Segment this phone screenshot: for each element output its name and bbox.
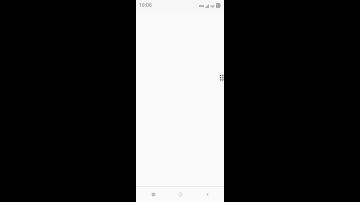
- button[interactable]: Back: [197, 187, 217, 202]
- button[interactable]: Home: [170, 187, 190, 202]
- button[interactable]: Recent apps: [143, 187, 163, 202]
- button[interactable]: Open panel: [219, 73, 224, 82]
- staticText: 10:06: [139, 2, 152, 9]
